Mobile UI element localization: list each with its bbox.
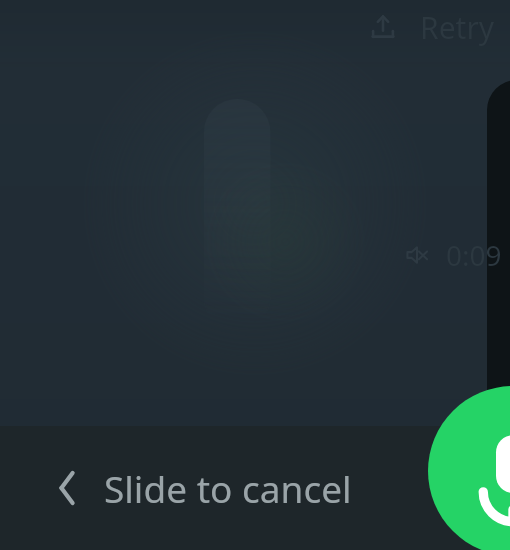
staticText: Retry (420, 7, 495, 48)
button[interactable]: Send voice message (428, 386, 510, 550)
staticText: 0:09 (446, 236, 502, 274)
other: Retry upload (362, 6, 404, 48)
button[interactable]: Retry upload (362, 6, 495, 48)
other: Unmute (402, 240, 432, 270)
staticText: Slide to cancel (104, 463, 352, 513)
button[interactable]: Unmute (402, 236, 502, 274)
button[interactable]: Slide to cancel (50, 458, 352, 518)
